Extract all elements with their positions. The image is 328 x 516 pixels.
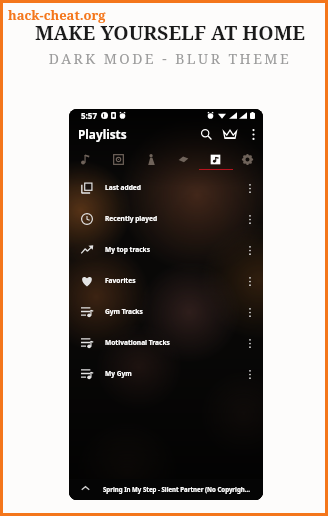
button[interactable]: Options for Motivational Tracks [243, 336, 257, 350]
staticText: Spring In My Step - Silent Partner (No C… [103, 485, 250, 493]
button[interactable]: Favorites [69, 265, 263, 296]
button[interactable]: Options for Favorites [243, 274, 257, 288]
staticText: Playlists [78, 126, 127, 142]
staticText: My Gym [105, 369, 132, 378]
button[interactable]: Options for My top tracks [243, 243, 257, 257]
button[interactable]: Playlists [199, 146, 231, 172]
button[interactable]: Premium [220, 124, 240, 144]
button[interactable]: My Gym [69, 358, 263, 389]
staticText: hack-cheat.org [8, 6, 106, 24]
button[interactable]: Settings [231, 146, 263, 172]
button[interactable]: Last added [69, 172, 263, 203]
button[interactable]: Spring In My Step - Silent Partner (No C… [69, 479, 263, 500]
staticText: Favorites [105, 276, 136, 285]
button[interactable]: Options for My Gym [243, 367, 257, 381]
button[interactable]: More options [244, 125, 262, 143]
staticText: My top tracks [105, 245, 150, 254]
button[interactable]: Songs [69, 146, 102, 172]
button[interactable]: Options for Gym Tracks [243, 305, 257, 319]
staticText: Last added [105, 183, 141, 192]
button[interactable]: Options for Last added [243, 181, 257, 195]
button[interactable]: Options for Recently played [243, 212, 257, 226]
staticText: 5:57 [81, 110, 97, 121]
staticText: Recently played [105, 214, 158, 223]
button[interactable]: Recently played [69, 203, 263, 234]
staticText: Motivational Tracks [105, 338, 170, 347]
button[interactable]: Search [196, 124, 216, 144]
button[interactable]: Gym Tracks [69, 296, 263, 327]
button[interactable]: My top tracks [69, 234, 263, 265]
button[interactable]: Genres [167, 146, 199, 172]
button[interactable]: Motivational Tracks [69, 327, 263, 358]
staticText: MAKE YOURSELF AT HOME [9, 19, 328, 46]
button[interactable]: Artists [135, 146, 167, 172]
staticText: DARK MODE - BLUR THEME [9, 49, 328, 68]
button[interactable]: Albums [102, 146, 135, 172]
staticText: Gym Tracks [105, 307, 143, 316]
